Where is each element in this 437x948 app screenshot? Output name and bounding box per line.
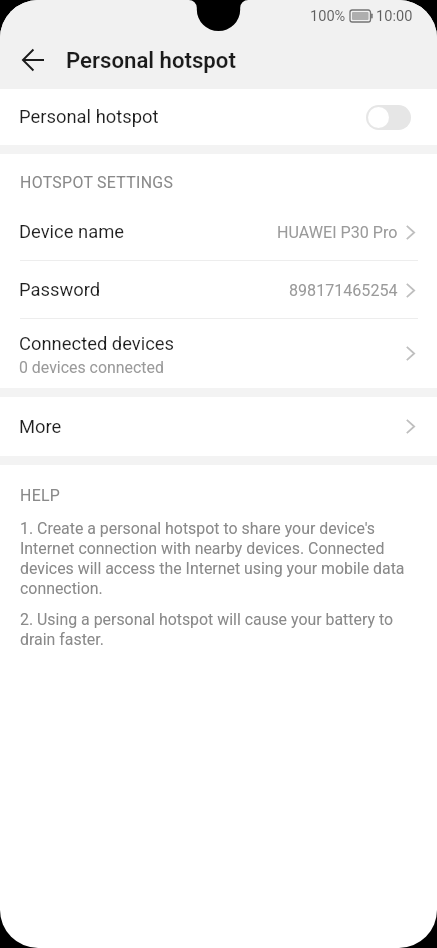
staticText: Personal hotspot [66, 47, 236, 73]
staticText: More [19, 416, 62, 438]
staticText: 100% [310, 7, 346, 24]
staticText: 0 devices connected [19, 358, 164, 377]
staticText: Device name [19, 221, 125, 243]
button[interactable]: Device name [0, 203, 437, 261]
button[interactable]: Connected devices [0, 319, 437, 388]
button[interactable]: Personal hotspot [0, 89, 437, 145]
staticText: Personal hotspot [19, 106, 159, 128]
button[interactable]: Personal hotspot switch [366, 105, 411, 130]
button[interactable]: Back [9, 36, 57, 84]
button[interactable]: Password [0, 261, 437, 319]
staticText: 898171465254 [289, 281, 398, 300]
staticText: 1. Create a personal hotspot to share yo… [20, 519, 417, 598]
staticText: HUAWEI P30 Pro [277, 223, 398, 242]
staticText: Password [19, 279, 101, 301]
button[interactable]: More [0, 397, 437, 456]
staticText: Connected devices [19, 333, 175, 355]
staticText: HOTSPOT SETTINGS [20, 173, 174, 192]
staticText: 2. Using a personal hotspot will cause y… [20, 610, 417, 649]
staticText: 10:00 [376, 7, 413, 24]
staticText: HELP [20, 486, 61, 505]
